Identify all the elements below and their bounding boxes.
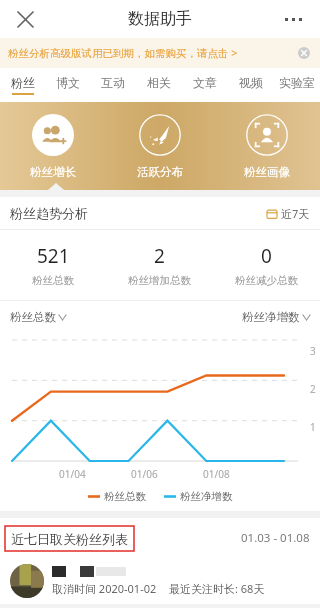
staticText: 视频 xyxy=(239,75,263,90)
staticText: 活跃分布 xyxy=(137,165,183,179)
staticText: 相关 xyxy=(147,75,171,90)
staticText: 粉丝总数 xyxy=(10,310,56,324)
staticText: 粉丝增加总数 xyxy=(128,274,191,287)
button[interactable]: 取消时间 2020-01-02 xyxy=(0,558,320,604)
staticText: 近7天 xyxy=(281,206,310,221)
staticText: 3 xyxy=(310,344,316,358)
staticText: 粉丝净增数 xyxy=(242,310,300,324)
staticText: 粉丝增长 xyxy=(30,165,76,179)
button[interactable]: 相关 xyxy=(136,68,182,102)
staticText: 最近关注时长: 68天 xyxy=(169,581,265,596)
button[interactable]: 0 xyxy=(213,243,320,287)
button[interactable]: 活跃分布 xyxy=(106,102,213,190)
button[interactable]: 博文 xyxy=(45,68,90,102)
button[interactable]: 粉丝增长 xyxy=(0,102,106,190)
staticText: 521 xyxy=(37,243,70,269)
button[interactable]: 实验室 xyxy=(274,68,320,102)
button[interactable]: 2 xyxy=(106,243,213,287)
staticText: 2 xyxy=(310,382,316,396)
staticText: 01/06 xyxy=(131,467,158,481)
staticText: 粉丝 xyxy=(11,75,35,90)
button[interactable]: 视频 xyxy=(228,68,274,102)
button[interactable]: 近7天 xyxy=(267,206,310,221)
button[interactable]: Close xyxy=(8,2,42,36)
staticText: 取消时间 2020-01-02 xyxy=(52,581,157,596)
button[interactable]: 近七日取关粉丝列表 xyxy=(5,526,134,551)
staticText: 粉丝趋势分析 xyxy=(10,205,88,221)
staticText: 粉丝分析高级版试用已到期，如需购买，请点击 > xyxy=(8,46,238,60)
button[interactable]: 粉丝分析高级版试用已到期，如需购买，请点击 > xyxy=(0,38,320,68)
staticText: 博文 xyxy=(56,75,80,90)
staticText: 互动 xyxy=(101,75,125,90)
staticText: 近七日取关粉丝列表 xyxy=(11,531,128,547)
button[interactable]: Dismiss banner xyxy=(295,44,313,62)
staticText: 01.03 - 01.08 xyxy=(241,530,310,546)
button[interactable]: 粉丝画像 xyxy=(213,102,320,190)
button[interactable]: More options xyxy=(276,2,310,36)
button[interactable]: 粉丝总数 xyxy=(10,310,66,324)
staticText: 实验室 xyxy=(279,75,315,90)
staticText: 文章 xyxy=(193,75,217,90)
staticText: 粉丝总数 xyxy=(104,490,146,503)
button[interactable]: 文章 xyxy=(182,68,228,102)
staticText: 01/08 xyxy=(203,467,230,481)
staticText: 1 xyxy=(310,420,316,434)
staticText: 粉丝净增数 xyxy=(180,490,233,503)
button[interactable]: 粉丝净增数 xyxy=(242,310,310,324)
staticText: 0 xyxy=(261,243,272,269)
button[interactable]: 521 xyxy=(0,243,106,287)
button[interactable]: 粉丝 xyxy=(0,68,45,102)
button[interactable]: 互动 xyxy=(90,68,136,102)
staticText: 数据助手 xyxy=(128,9,192,29)
staticText: 粉丝减少总数 xyxy=(235,274,298,287)
staticText: 01/04 xyxy=(59,467,86,481)
staticText: 2 xyxy=(154,243,165,269)
staticText: 粉丝总数 xyxy=(32,274,74,287)
staticText: 粉丝画像 xyxy=(244,165,290,179)
